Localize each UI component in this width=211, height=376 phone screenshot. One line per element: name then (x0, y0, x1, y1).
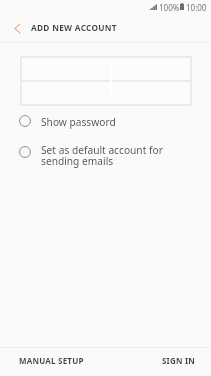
staticText: Set as default account for sending email… (41, 143, 163, 168)
staticText: Show password (41, 115, 116, 129)
button[interactable]: MANUAL SETUP (0, 348, 105, 376)
button[interactable]: Back (4, 13, 30, 43)
staticText: SIGN IN (162, 355, 195, 366)
button[interactable]: Email address (21, 57, 191, 81)
staticText: MANUAL SETUP (19, 355, 84, 366)
staticText: 10:00 (186, 2, 207, 13)
button[interactable]: Password (21, 81, 191, 105)
button[interactable]: Set as default account for sending email… (0, 142, 211, 172)
staticText: ADD NEW ACCOUNT (31, 22, 117, 33)
staticText: 100% (159, 2, 180, 13)
button[interactable]: SIGN IN (105, 348, 211, 376)
button[interactable]: Show password (0, 112, 211, 132)
